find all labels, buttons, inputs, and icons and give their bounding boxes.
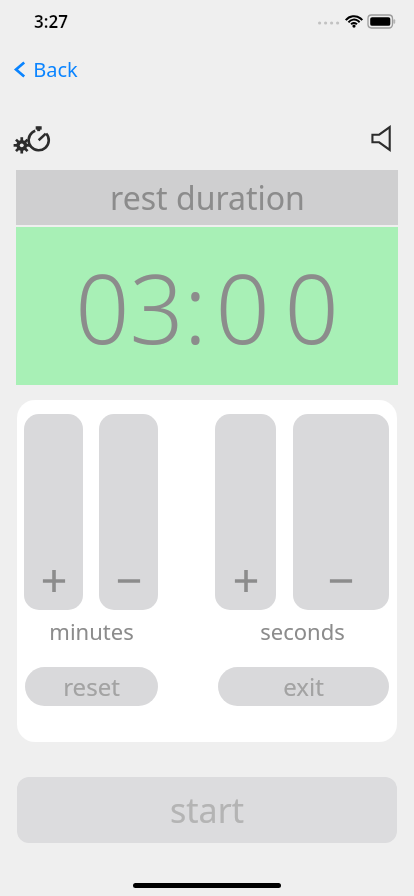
staticText: rest duration: [110, 176, 305, 220]
button[interactable]: Add minute: [24, 414, 83, 610]
staticText: Back: [33, 56, 78, 83]
staticText: reset: [63, 670, 120, 703]
button[interactable]: Subtract minute: [99, 414, 158, 610]
button[interactable]: rest duration: [16, 170, 398, 225]
staticText: minutes: [49, 616, 134, 646]
button[interactable]: exit: [218, 667, 389, 706]
button[interactable]: Subtract second: [293, 414, 389, 610]
staticText: 3:27: [34, 10, 68, 33]
staticText: 0: [215, 242, 270, 371]
button[interactable]: Sound muted: [360, 116, 406, 160]
staticText: exit: [283, 670, 324, 703]
staticText: seconds: [260, 616, 345, 646]
staticText: 03:: [75, 242, 207, 371]
button[interactable]: Back: [8, 52, 84, 87]
button[interactable]: Add second: [215, 414, 276, 610]
button[interactable]: start: [17, 777, 397, 843]
staticText: start: [170, 787, 244, 833]
button[interactable]: Timer settings: [10, 116, 58, 160]
staticText: 0: [284, 242, 339, 371]
button[interactable]: reset: [25, 667, 158, 706]
